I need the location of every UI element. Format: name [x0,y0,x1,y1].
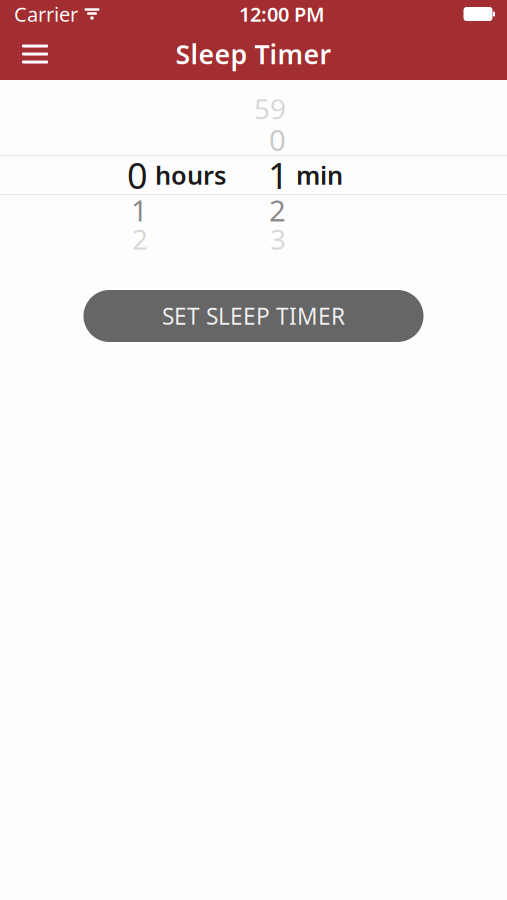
staticText: 3 [270,220,286,258]
staticText: Carrier [14,1,78,27]
staticText: min [296,158,343,192]
button[interactable]: SET SLEEP TIMER [83,290,423,342]
staticText: SET SLEEP TIMER [162,301,345,331]
staticText: 0 [269,120,286,159]
staticText: 59 [254,90,286,127]
staticText: hours [155,158,226,192]
staticText: 2 [269,190,286,229]
staticText: 0 [127,151,148,199]
staticText: 12:00 PM [239,1,325,27]
staticText: 1 [131,190,148,229]
staticText: 2 [132,220,148,258]
button[interactable]: Menu [12,32,58,76]
staticText: Sleep Timer [175,36,331,72]
staticText: 1 [268,151,289,199]
